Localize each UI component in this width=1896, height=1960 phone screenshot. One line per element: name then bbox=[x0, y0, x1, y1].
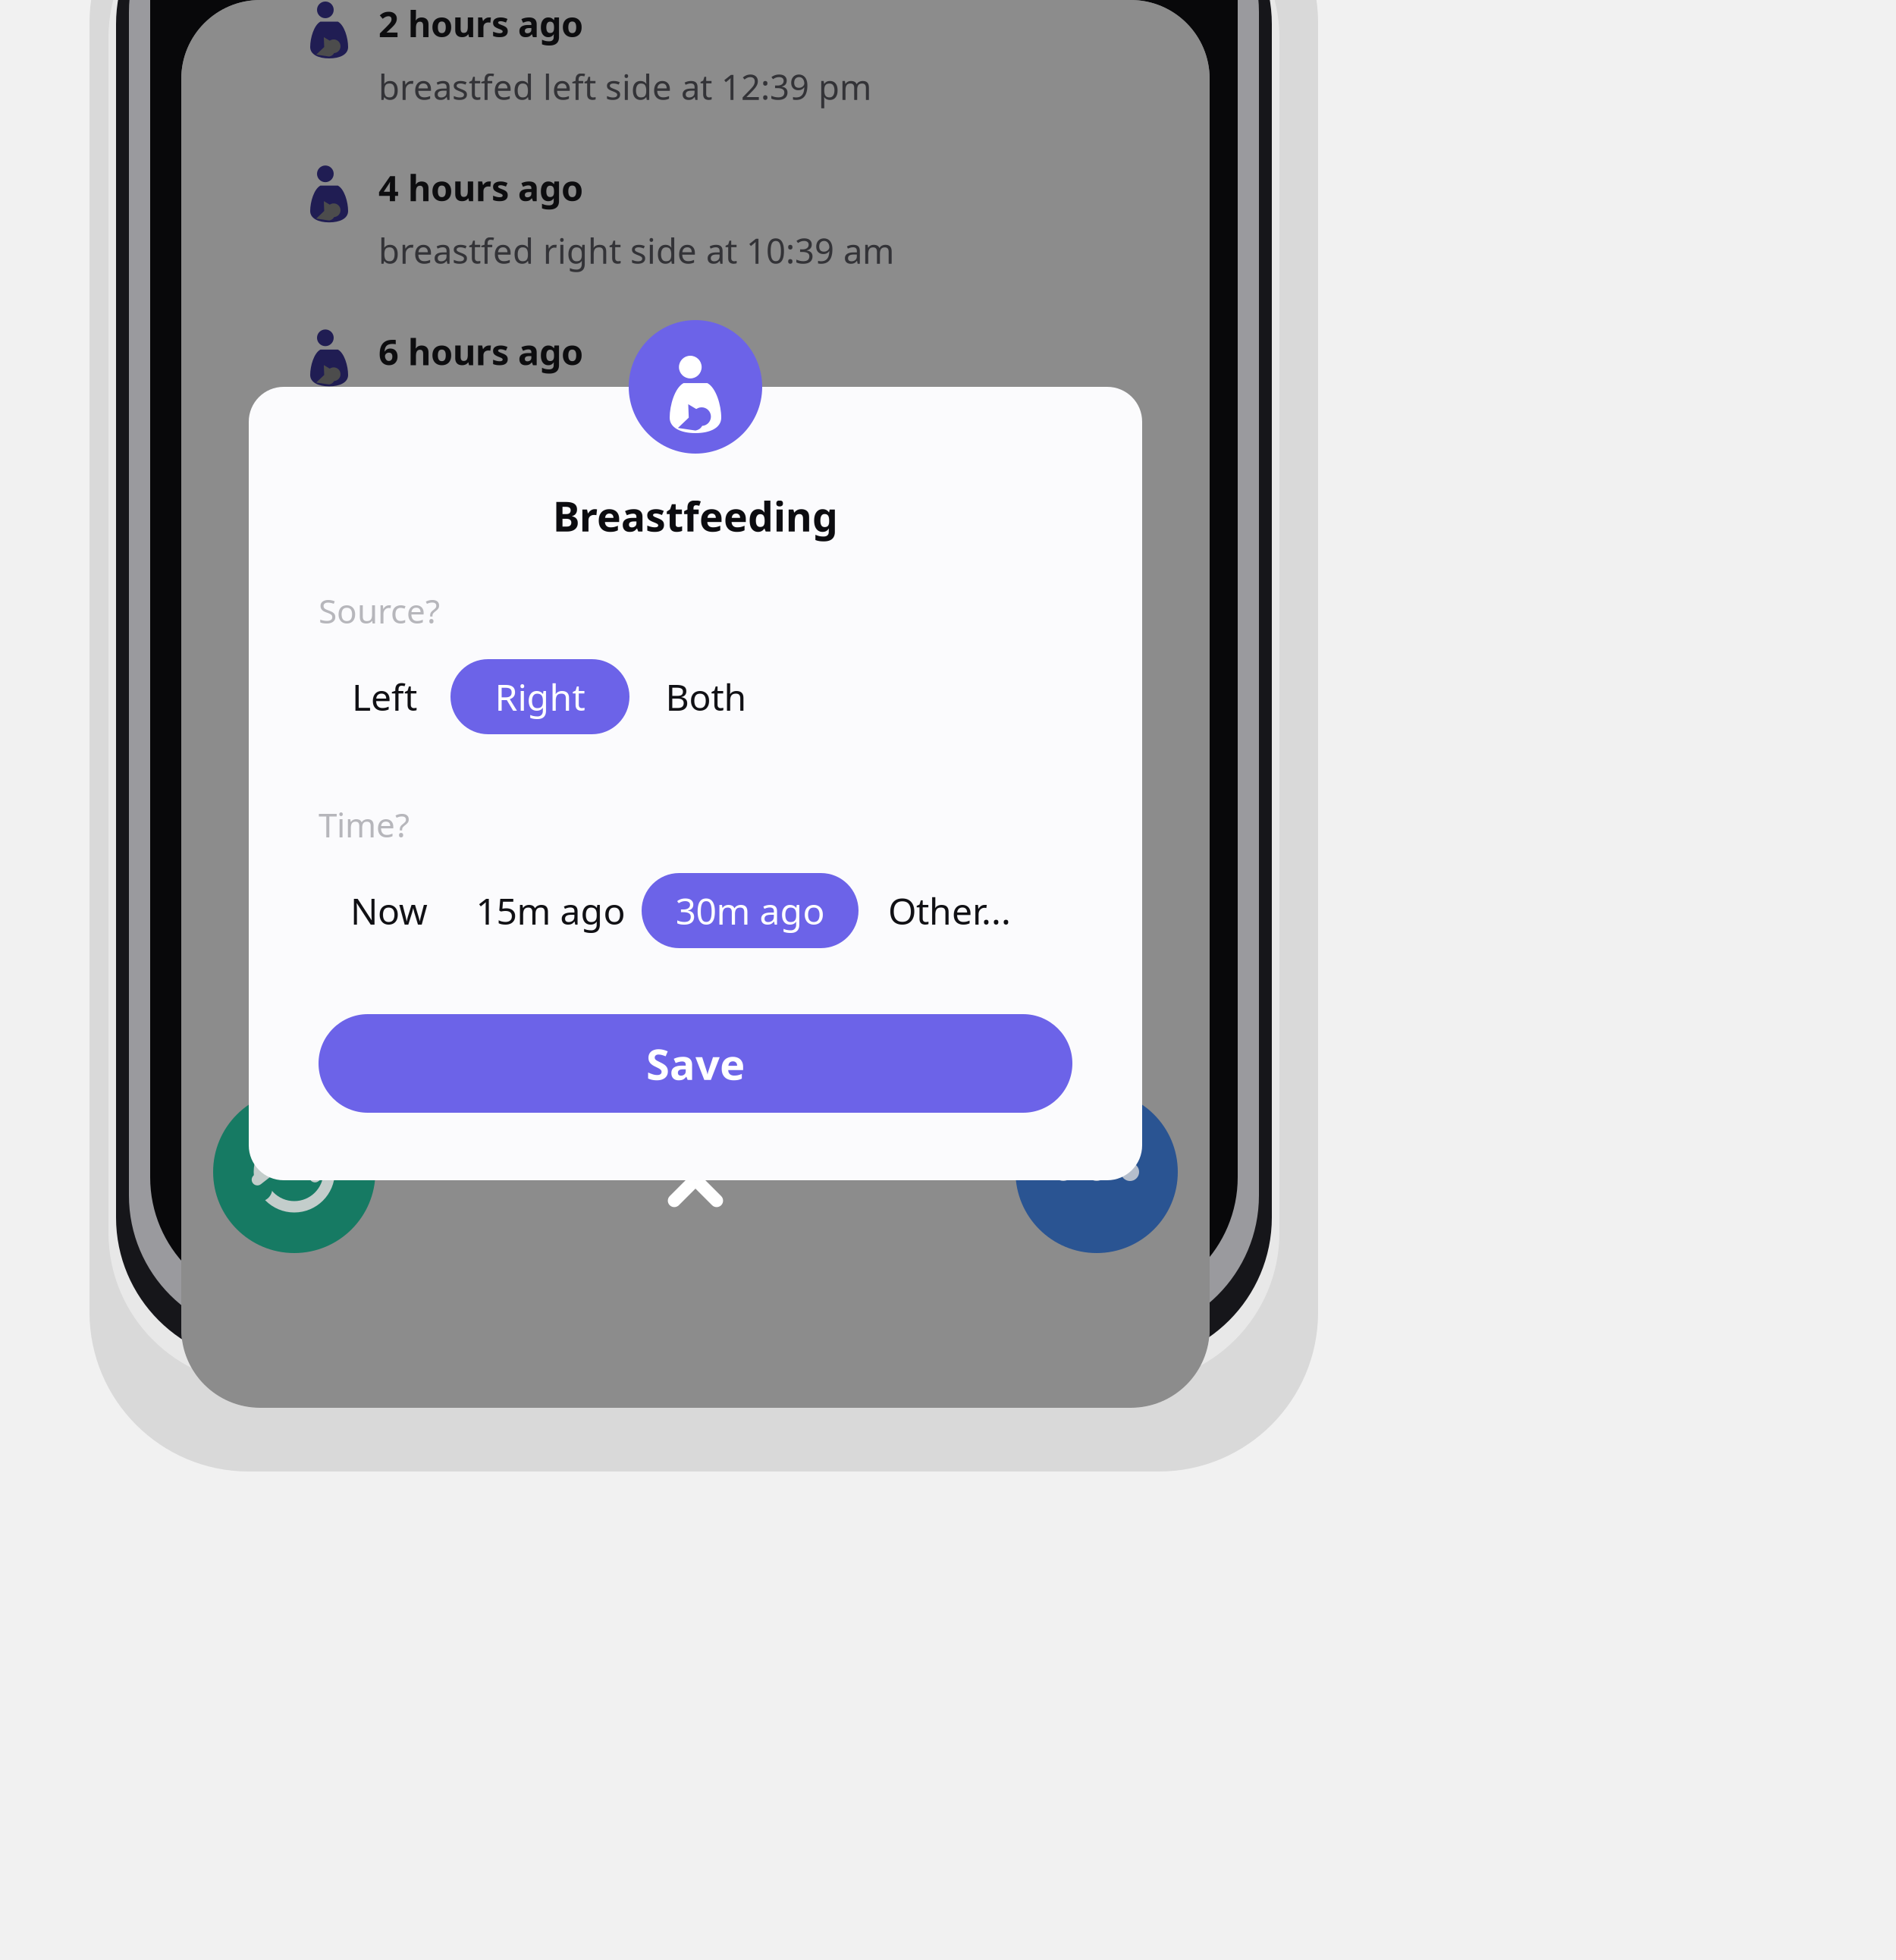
staticText: Breastfeeding bbox=[553, 489, 838, 543]
staticText: 2 hours ago bbox=[378, 0, 583, 47]
button[interactable]: Left bbox=[319, 659, 450, 734]
button[interactable]: Other... bbox=[859, 873, 1041, 948]
staticText: breastfed left side at 6:54 pm bbox=[378, 720, 852, 765]
staticText: 6 hours ago bbox=[378, 328, 583, 375]
button[interactable]: 15m ago bbox=[460, 873, 642, 948]
staticText: breastfed right side at 10:39 am bbox=[378, 228, 894, 273]
button[interactable]: Close bbox=[646, 1130, 745, 1229]
staticText: 15m ago bbox=[476, 886, 625, 935]
staticText: Time? bbox=[319, 802, 410, 847]
staticText: ~12 hours ago bbox=[378, 492, 624, 539]
staticText: Left bbox=[352, 672, 417, 721]
button[interactable]: Right bbox=[450, 659, 629, 734]
staticText: ~20 hours ago bbox=[378, 656, 624, 703]
button[interactable]: 30m ago bbox=[642, 873, 859, 948]
button[interactable]: Now bbox=[319, 873, 460, 948]
button[interactable]: More options bbox=[1015, 1091, 1178, 1253]
staticText: Save bbox=[646, 1035, 745, 1092]
staticText: 30m ago bbox=[675, 886, 825, 935]
staticText: breastfed left side at 12:39 pm bbox=[378, 64, 871, 109]
staticText: Right bbox=[495, 672, 585, 721]
button[interactable]: Save bbox=[319, 1014, 1072, 1113]
button[interactable]: Switch side bbox=[213, 1091, 375, 1253]
button[interactable]: Both bbox=[629, 659, 783, 734]
staticText: Source? bbox=[319, 588, 440, 633]
staticText: Now bbox=[350, 886, 428, 935]
staticText: breastfed both sides at 8:39 am bbox=[378, 392, 888, 437]
staticText: Both bbox=[665, 672, 747, 721]
staticText: 4 hours ago bbox=[378, 164, 583, 211]
staticText: Other... bbox=[888, 886, 1011, 935]
